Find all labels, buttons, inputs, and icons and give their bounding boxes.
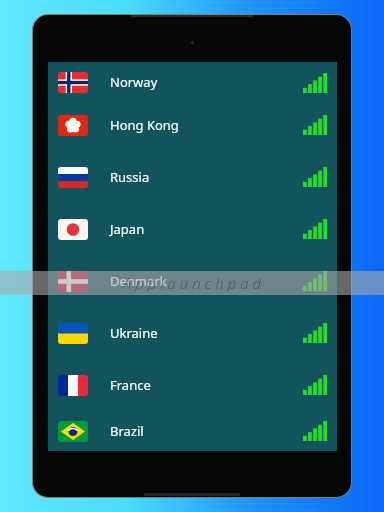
button[interactable]: Hong Kong [48, 99, 337, 151]
button[interactable]: Japan [48, 203, 337, 255]
staticText: Norway [110, 73, 158, 91]
button[interactable]: France [48, 359, 337, 411]
button[interactable]: Norway [48, 62, 337, 99]
staticText: Denmark [110, 272, 167, 290]
other: Signal strength [303, 375, 327, 395]
staticText: A p p l a u n c h p a d [123, 273, 262, 293]
staticText: Ukraine [110, 324, 158, 342]
staticText: Russia [110, 168, 150, 186]
other: Signal strength [303, 323, 327, 343]
other: Signal strength [303, 167, 327, 187]
button[interactable]: Brazil [48, 411, 337, 451]
other: Signal strength [303, 73, 327, 93]
button[interactable]: Ukraine [48, 307, 337, 359]
staticText: Hong Kong [110, 116, 179, 134]
button[interactable]: Russia [48, 151, 337, 203]
other: Signal strength [303, 421, 327, 441]
staticText: Brazil [110, 422, 144, 440]
staticText: Japan [110, 220, 145, 238]
other: Signal strength [303, 115, 327, 135]
button[interactable]: Denmark [48, 255, 337, 307]
other: Signal strength [303, 219, 327, 239]
other: Signal strength [303, 271, 327, 291]
staticText: France [110, 376, 151, 394]
